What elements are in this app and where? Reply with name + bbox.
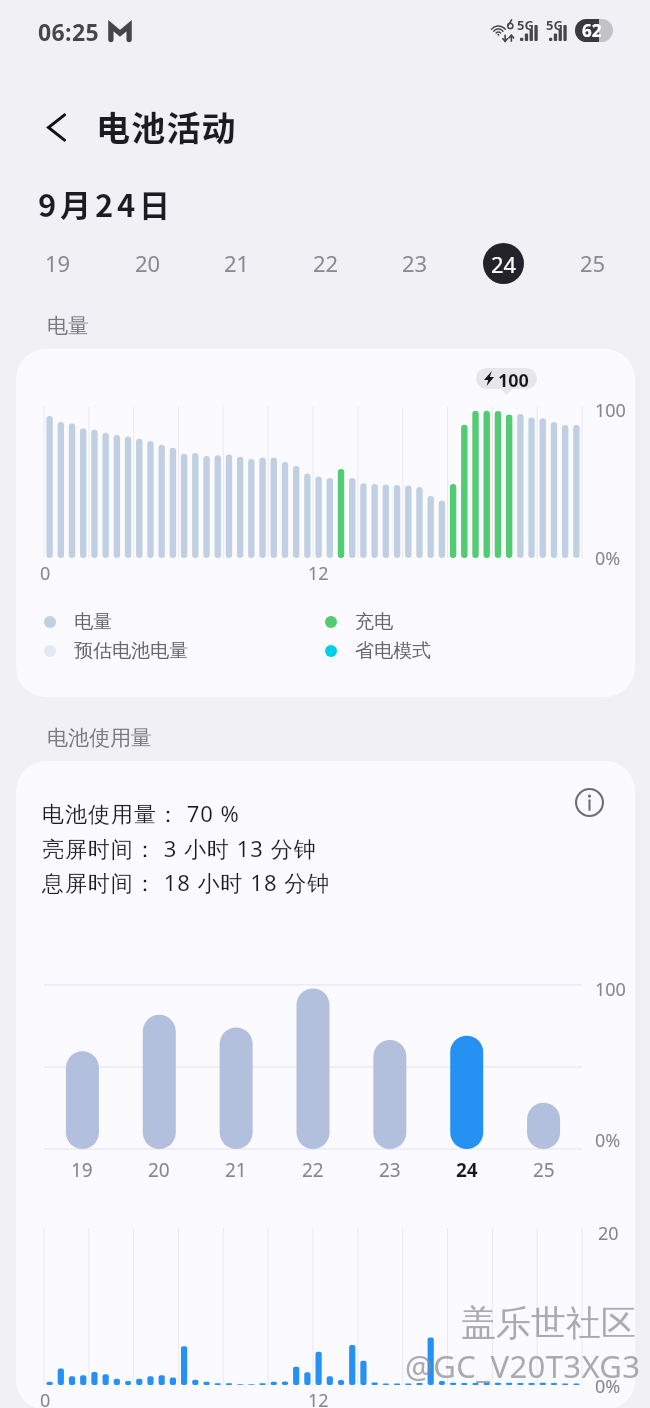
staticText: 21 bbox=[225, 1157, 247, 1183]
staticText: 亮屏时间： 3 小时 13 分钟 bbox=[42, 833, 317, 863]
button[interactable]: Back bbox=[19, 90, 91, 162]
staticText: 100 bbox=[595, 977, 626, 1002]
staticText: 12 bbox=[308, 561, 329, 586]
staticText: 9月24日 bbox=[38, 181, 174, 226]
staticText: 电池使用量 bbox=[47, 725, 152, 751]
button[interactable]: 20 bbox=[103, 228, 192, 298]
button[interactable]: 25 bbox=[548, 228, 637, 298]
staticText: @GC_V20T3XG3 bbox=[405, 1345, 641, 1387]
button[interactable]: 23 bbox=[370, 228, 459, 298]
staticText: 12 bbox=[308, 1388, 329, 1408]
staticText: 24 bbox=[491, 249, 517, 279]
staticText: 22 bbox=[302, 1157, 324, 1183]
staticText: 电量 bbox=[74, 610, 112, 634]
staticText: 0 bbox=[40, 561, 51, 586]
staticText: 0% bbox=[595, 546, 621, 571]
staticText: 预估电池电量 bbox=[74, 639, 188, 663]
button[interactable]: Information bbox=[564, 777, 614, 827]
button[interactable]: 19 bbox=[13, 228, 103, 298]
button[interactable]: 21 bbox=[192, 228, 281, 298]
staticText: 0% bbox=[595, 1374, 621, 1399]
staticText: 0% bbox=[595, 1128, 621, 1153]
staticText: 省电模式 bbox=[355, 639, 431, 663]
staticText: 19 bbox=[71, 1157, 93, 1183]
staticText: 23 bbox=[379, 1157, 401, 1183]
staticText: 5G bbox=[546, 16, 563, 34]
staticText: 20 bbox=[135, 248, 161, 278]
staticText: 5G bbox=[517, 16, 534, 34]
staticText: 19 bbox=[45, 248, 71, 278]
staticText: 充电 bbox=[355, 610, 393, 634]
staticText: 电池使用量： 70 % bbox=[42, 798, 240, 828]
staticText: 21 bbox=[224, 248, 250, 278]
staticText: 06:25 bbox=[38, 16, 100, 47]
staticText: 电量 bbox=[47, 313, 89, 339]
button[interactable]: 24 bbox=[459, 228, 548, 298]
staticText: 100 bbox=[595, 398, 626, 423]
staticText: 20 bbox=[148, 1157, 170, 1183]
staticText: 电池活动 bbox=[96, 102, 237, 151]
staticText: 22 bbox=[313, 248, 339, 278]
staticText: 0 bbox=[40, 1388, 51, 1408]
staticText: 100 bbox=[498, 368, 529, 389]
staticText: 20 bbox=[598, 1221, 619, 1246]
button[interactable]: 22 bbox=[281, 228, 370, 298]
staticText: 25 bbox=[580, 248, 606, 278]
staticText: 62 bbox=[582, 19, 602, 42]
staticText: 息屏时间： 18 小时 18 分钟 bbox=[42, 867, 331, 897]
staticText: 24 bbox=[456, 1157, 478, 1183]
staticText: 23 bbox=[402, 248, 428, 278]
staticText: 盖乐世社区 bbox=[461, 1301, 636, 1345]
staticText: 25 bbox=[533, 1157, 555, 1183]
